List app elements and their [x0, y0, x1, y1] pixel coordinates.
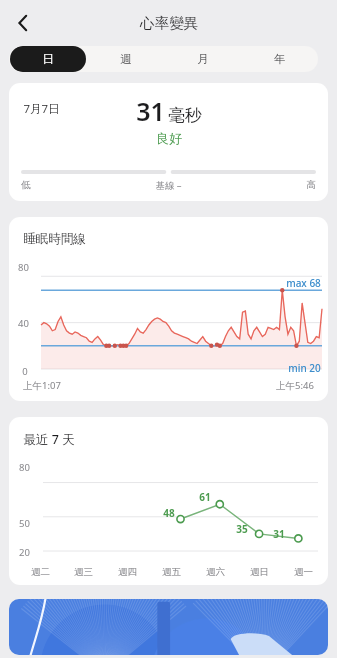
- staticText: 年: [274, 52, 286, 66]
- button[interactable]: 睡眠時間線: [9, 217, 328, 401]
- staticText: 心率變異: [140, 14, 198, 32]
- staticText: 80: [18, 261, 29, 274]
- button[interactable]: 7月7日: [9, 83, 328, 201]
- staticText: 基線 –: [155, 179, 182, 192]
- staticText: 31: [136, 94, 165, 128]
- staticText: 61: [199, 490, 211, 504]
- staticText: 週日: [250, 566, 269, 578]
- staticText: 日: [42, 52, 54, 66]
- staticText: 上午5:46: [276, 379, 314, 392]
- staticText: 40: [18, 317, 29, 330]
- button[interactable]: Promotion banner: [9, 599, 328, 655]
- staticText: 上午1:07: [23, 379, 61, 392]
- staticText: 毫秒: [168, 105, 202, 126]
- button[interactable]: 週: [88, 46, 163, 72]
- button[interactable]: 日: [10, 46, 86, 72]
- staticText: 高: [306, 179, 316, 191]
- button[interactable]: 月: [165, 46, 240, 72]
- staticText: 週二: [31, 566, 50, 578]
- staticText: 良好: [156, 130, 182, 146]
- staticText: 7月7日: [23, 101, 60, 117]
- staticText: 50: [19, 517, 30, 530]
- staticText: 35: [236, 522, 248, 536]
- staticText: 80: [19, 461, 30, 474]
- staticText: 31: [273, 527, 285, 541]
- staticText: 月: [197, 52, 209, 66]
- staticText: 0: [22, 365, 28, 378]
- staticText: 低: [21, 179, 31, 191]
- staticText: 週一: [294, 566, 313, 578]
- staticText: 週: [120, 52, 132, 66]
- staticText: 週四: [118, 566, 137, 578]
- staticText: max 68: [286, 276, 321, 290]
- button[interactable]: 年: [242, 46, 317, 72]
- staticText: 睡眠時間線: [23, 231, 86, 247]
- staticText: 最近 7 天: [23, 431, 75, 448]
- staticText: min 20: [288, 361, 321, 375]
- staticText: 20: [19, 546, 30, 559]
- staticText: 週六: [206, 566, 225, 578]
- staticText: 週三: [74, 566, 93, 578]
- staticText: 48: [163, 506, 175, 520]
- button[interactable]: Back: [6, 6, 40, 40]
- staticText: 週五: [162, 566, 181, 578]
- button[interactable]: 最近 7 天: [9, 417, 328, 585]
